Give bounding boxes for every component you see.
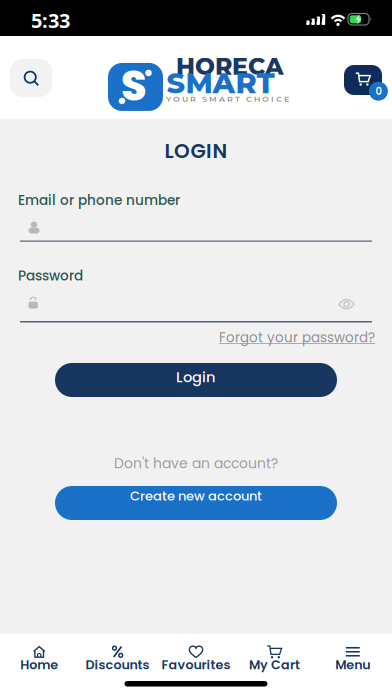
button[interactable]: My Cart	[235, 645, 314, 674]
button[interactable]: Home	[0, 645, 78, 674]
staticText: LOGIN	[164, 137, 227, 165]
staticText: S	[121, 57, 147, 115]
staticText: Y O U R S M A R T C H O I C E	[166, 94, 289, 104]
staticText: Login	[176, 367, 216, 387]
button[interactable]: Create new account	[55, 486, 337, 520]
button[interactable]: Show password	[338, 298, 355, 310]
button[interactable]: Discounts	[78, 645, 157, 674]
staticText: My Cart	[249, 656, 300, 674]
staticText: Email or phone number	[18, 191, 180, 210]
staticText: 0	[375, 84, 381, 98]
staticText: Home	[20, 656, 58, 674]
button[interactable]: Login	[55, 363, 337, 397]
staticText: Forgot your password?	[219, 328, 375, 347]
staticText: SMART	[166, 65, 274, 100]
staticText: Menu	[335, 656, 370, 674]
button[interactable]: Search	[10, 59, 52, 97]
button[interactable]: My Cart	[344, 65, 382, 95]
staticText: HORECA	[176, 52, 284, 81]
staticText: 5:33	[31, 7, 70, 34]
staticText: Create new account	[130, 487, 262, 505]
button[interactable]: Forgot your password?	[219, 328, 375, 347]
button[interactable]: Menu	[314, 645, 392, 674]
button[interactable]: Favourites	[157, 645, 235, 674]
staticText: Favourites	[161, 656, 230, 674]
staticText: Password	[18, 266, 83, 285]
staticText: Don't have an account?	[114, 454, 278, 473]
staticText: Discounts	[86, 656, 150, 674]
